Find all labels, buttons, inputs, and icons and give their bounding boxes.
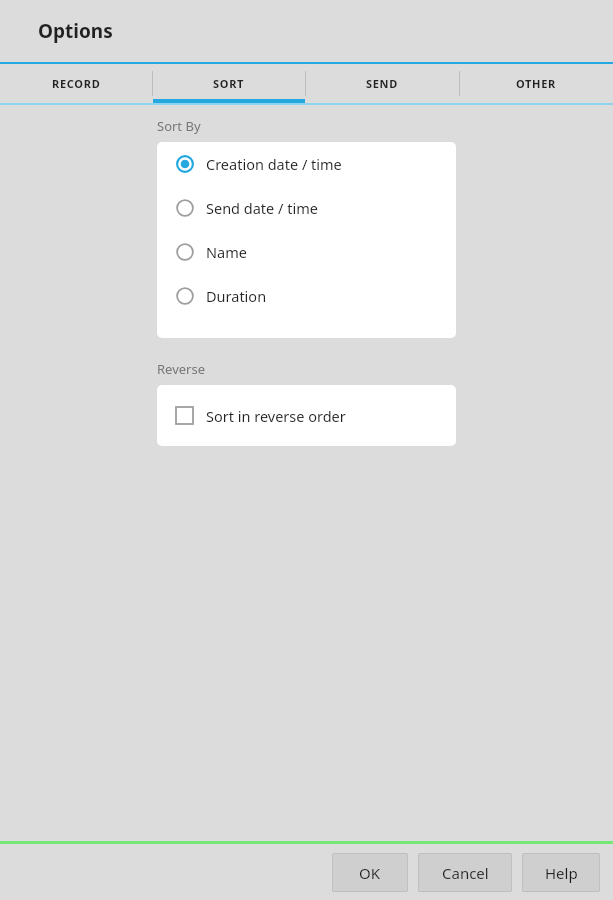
staticText: OK <box>359 863 381 883</box>
button[interactable]: Name <box>157 230 456 274</box>
staticText: Send date / time <box>206 198 318 218</box>
staticText: Sort in reverse order <box>206 406 346 426</box>
staticText: Creation date / time <box>206 154 342 174</box>
staticText: Sort By <box>157 117 201 135</box>
staticText: Duration <box>206 286 267 306</box>
button[interactable]: Sort in reverse order <box>157 385 456 446</box>
button[interactable]: Creation date / time <box>157 142 456 186</box>
button[interactable]: SORT <box>153 64 305 103</box>
button[interactable]: RECORD <box>0 64 152 103</box>
staticText: Cancel <box>442 863 489 883</box>
staticText: Options <box>38 18 113 44</box>
staticText: RECORD <box>52 76 101 91</box>
button[interactable]: Cancel <box>418 853 512 892</box>
button[interactable]: Duration <box>157 274 456 318</box>
staticText: Help <box>545 863 578 883</box>
button[interactable]: Send date / time <box>157 186 456 230</box>
staticText: SEND <box>366 76 399 91</box>
staticText: OTHER <box>516 76 557 91</box>
staticText: Name <box>206 242 247 262</box>
button[interactable]: OTHER <box>460 64 613 103</box>
button[interactable]: OK <box>332 853 408 892</box>
staticText: SORT <box>213 76 245 91</box>
staticText: Reverse <box>157 360 206 378</box>
button[interactable]: Help <box>522 853 600 892</box>
button[interactable]: SEND <box>306 64 459 103</box>
